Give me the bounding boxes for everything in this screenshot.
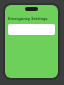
staticText: Emergency Settings — [8, 16, 48, 21]
